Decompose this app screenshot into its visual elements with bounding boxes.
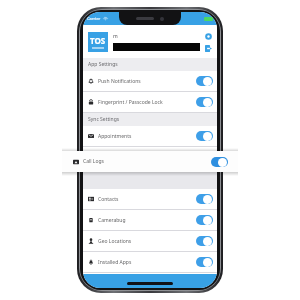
button[interactable]: Appointments [83,126,217,146]
staticText: Installed Apps [98,259,196,266]
button[interactable]: Contacts [83,189,217,209]
staticText: Appointments [98,133,196,140]
button[interactable]: Log out [204,44,212,52]
button[interactable]: Installed Apps [83,252,217,272]
button[interactable]: Browser History [83,147,217,167]
staticText: Fingerprint / Passcode Lock [98,99,196,106]
staticText: Browser History [98,154,196,161]
button[interactable]: Camerabug [83,210,217,230]
staticText: m [113,33,118,40]
staticText: Call Logs [83,158,211,165]
button[interactable]: Toggle [196,257,213,267]
button[interactable]: Toggle [196,236,213,246]
button[interactable]: Call Logs [62,151,238,172]
staticText: Contacts [98,196,196,203]
staticText: App Settings [88,61,118,68]
button[interactable]: Toggle [196,194,213,204]
button[interactable]: Push Notifications [83,71,217,91]
staticText: Push Notifications [98,78,196,85]
button[interactable]: Toggle [196,152,213,162]
button[interactable]: Toggle [196,131,213,141]
button[interactable]: TOS logo [88,32,108,52]
button[interactable]: Toggle [196,97,213,107]
button[interactable]: Toggle [196,76,213,86]
button[interactable]: Settings [204,32,212,40]
staticText: Camerabug [98,217,196,224]
button[interactable]: Toggle [196,215,213,225]
button[interactable]: Toggle [211,157,228,167]
button[interactable]: Geo Locations [83,231,217,251]
staticText: Carrier [87,16,101,21]
button[interactable]: Fingerprint / Passcode Lock [83,92,217,112]
staticText: Geo Locations [98,238,196,245]
staticText: TOS [90,35,106,46]
staticText: Sync Settings [88,116,120,123]
